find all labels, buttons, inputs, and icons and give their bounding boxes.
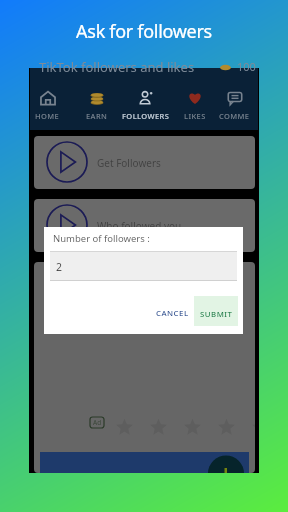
button[interactable]: Home: [23, 90, 72, 121]
staticText: COMMENTS: [219, 111, 251, 121]
staticText: Number of followers :: [53, 232, 150, 245]
staticText: Ask for followers: [0, 19, 288, 44]
other: Earn: [89, 90, 105, 106]
staticText: EARN: [86, 111, 108, 121]
button[interactable]: CANCEL: [151, 298, 193, 328]
staticText: TikTok followers and likes: [39, 58, 195, 76]
button[interactable]: Followers: [121, 90, 170, 121]
staticText: Get Followers: [97, 156, 161, 170]
other: Comments: [227, 90, 243, 106]
button[interactable]: SUBMIT: [194, 296, 238, 326]
staticText: 2: [56, 260, 63, 274]
button[interactable]: Comments: [219, 90, 251, 121]
staticText: CANCEL: [156, 308, 189, 319]
staticText: Who followed you: [97, 219, 182, 233]
staticText: FOLLOWERS: [122, 111, 170, 121]
staticText: 100: [237, 59, 256, 74]
staticText: LIKES: [184, 111, 206, 121]
button[interactable]: Who followed you: [34, 199, 255, 252]
staticText: SUBMIT: [200, 309, 233, 320]
button[interactable]: Earn: [72, 90, 121, 121]
other: Likes: [187, 90, 203, 106]
other: Followers: [138, 90, 154, 106]
staticText: HOME: [35, 111, 60, 121]
other: Home: [40, 90, 56, 106]
button[interactable]: Get Followers: [34, 136, 255, 189]
button[interactable]: Ad: [34, 262, 255, 473]
staticText: Ad: [93, 418, 102, 427]
button[interactable]: Likes: [170, 90, 219, 121]
